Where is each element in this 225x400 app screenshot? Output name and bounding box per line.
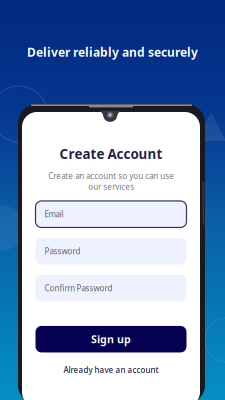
staticText: Already have an account (63, 365, 158, 375)
staticText: Create Account (59, 145, 162, 163)
staticText: Email (44, 209, 63, 219)
staticText: Create an account so you can use our ser… (48, 171, 174, 192)
staticText: Password (44, 246, 80, 256)
staticText: Sign up (91, 332, 131, 346)
staticText: Deliver reliably and securely (27, 44, 198, 60)
staticText: Confirm Password (44, 283, 112, 293)
button[interactable]: Already have an account (51, 364, 171, 375)
button[interactable]: Sign up (35, 326, 186, 352)
